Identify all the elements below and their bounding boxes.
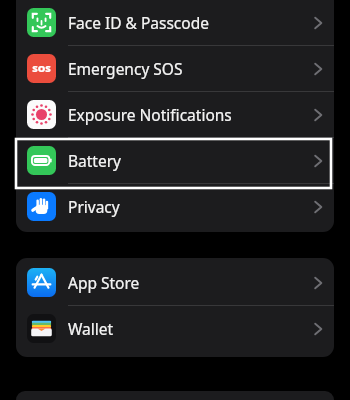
staticText: Privacy: [68, 196, 120, 217]
button[interactable]: App Store: [16, 260, 334, 305]
staticText: App Store: [68, 272, 140, 293]
button[interactable]: Battery: [16, 138, 334, 183]
staticText: SOS: [32, 62, 51, 75]
staticText: Wallet: [68, 318, 114, 339]
staticText: Battery: [68, 150, 122, 171]
button[interactable]: Exposure Notifications: [16, 92, 334, 137]
staticText: Emergency SOS: [68, 58, 183, 79]
button[interactable]: Privacy: [16, 184, 334, 229]
button[interactable]: Wallet: [16, 306, 334, 351]
button[interactable]: Face ID & Passcode: [16, 0, 334, 45]
button[interactable]: SOS: [16, 46, 334, 91]
staticText: Face ID & Passcode: [68, 12, 209, 33]
staticText: Exposure Notifications: [68, 104, 232, 125]
